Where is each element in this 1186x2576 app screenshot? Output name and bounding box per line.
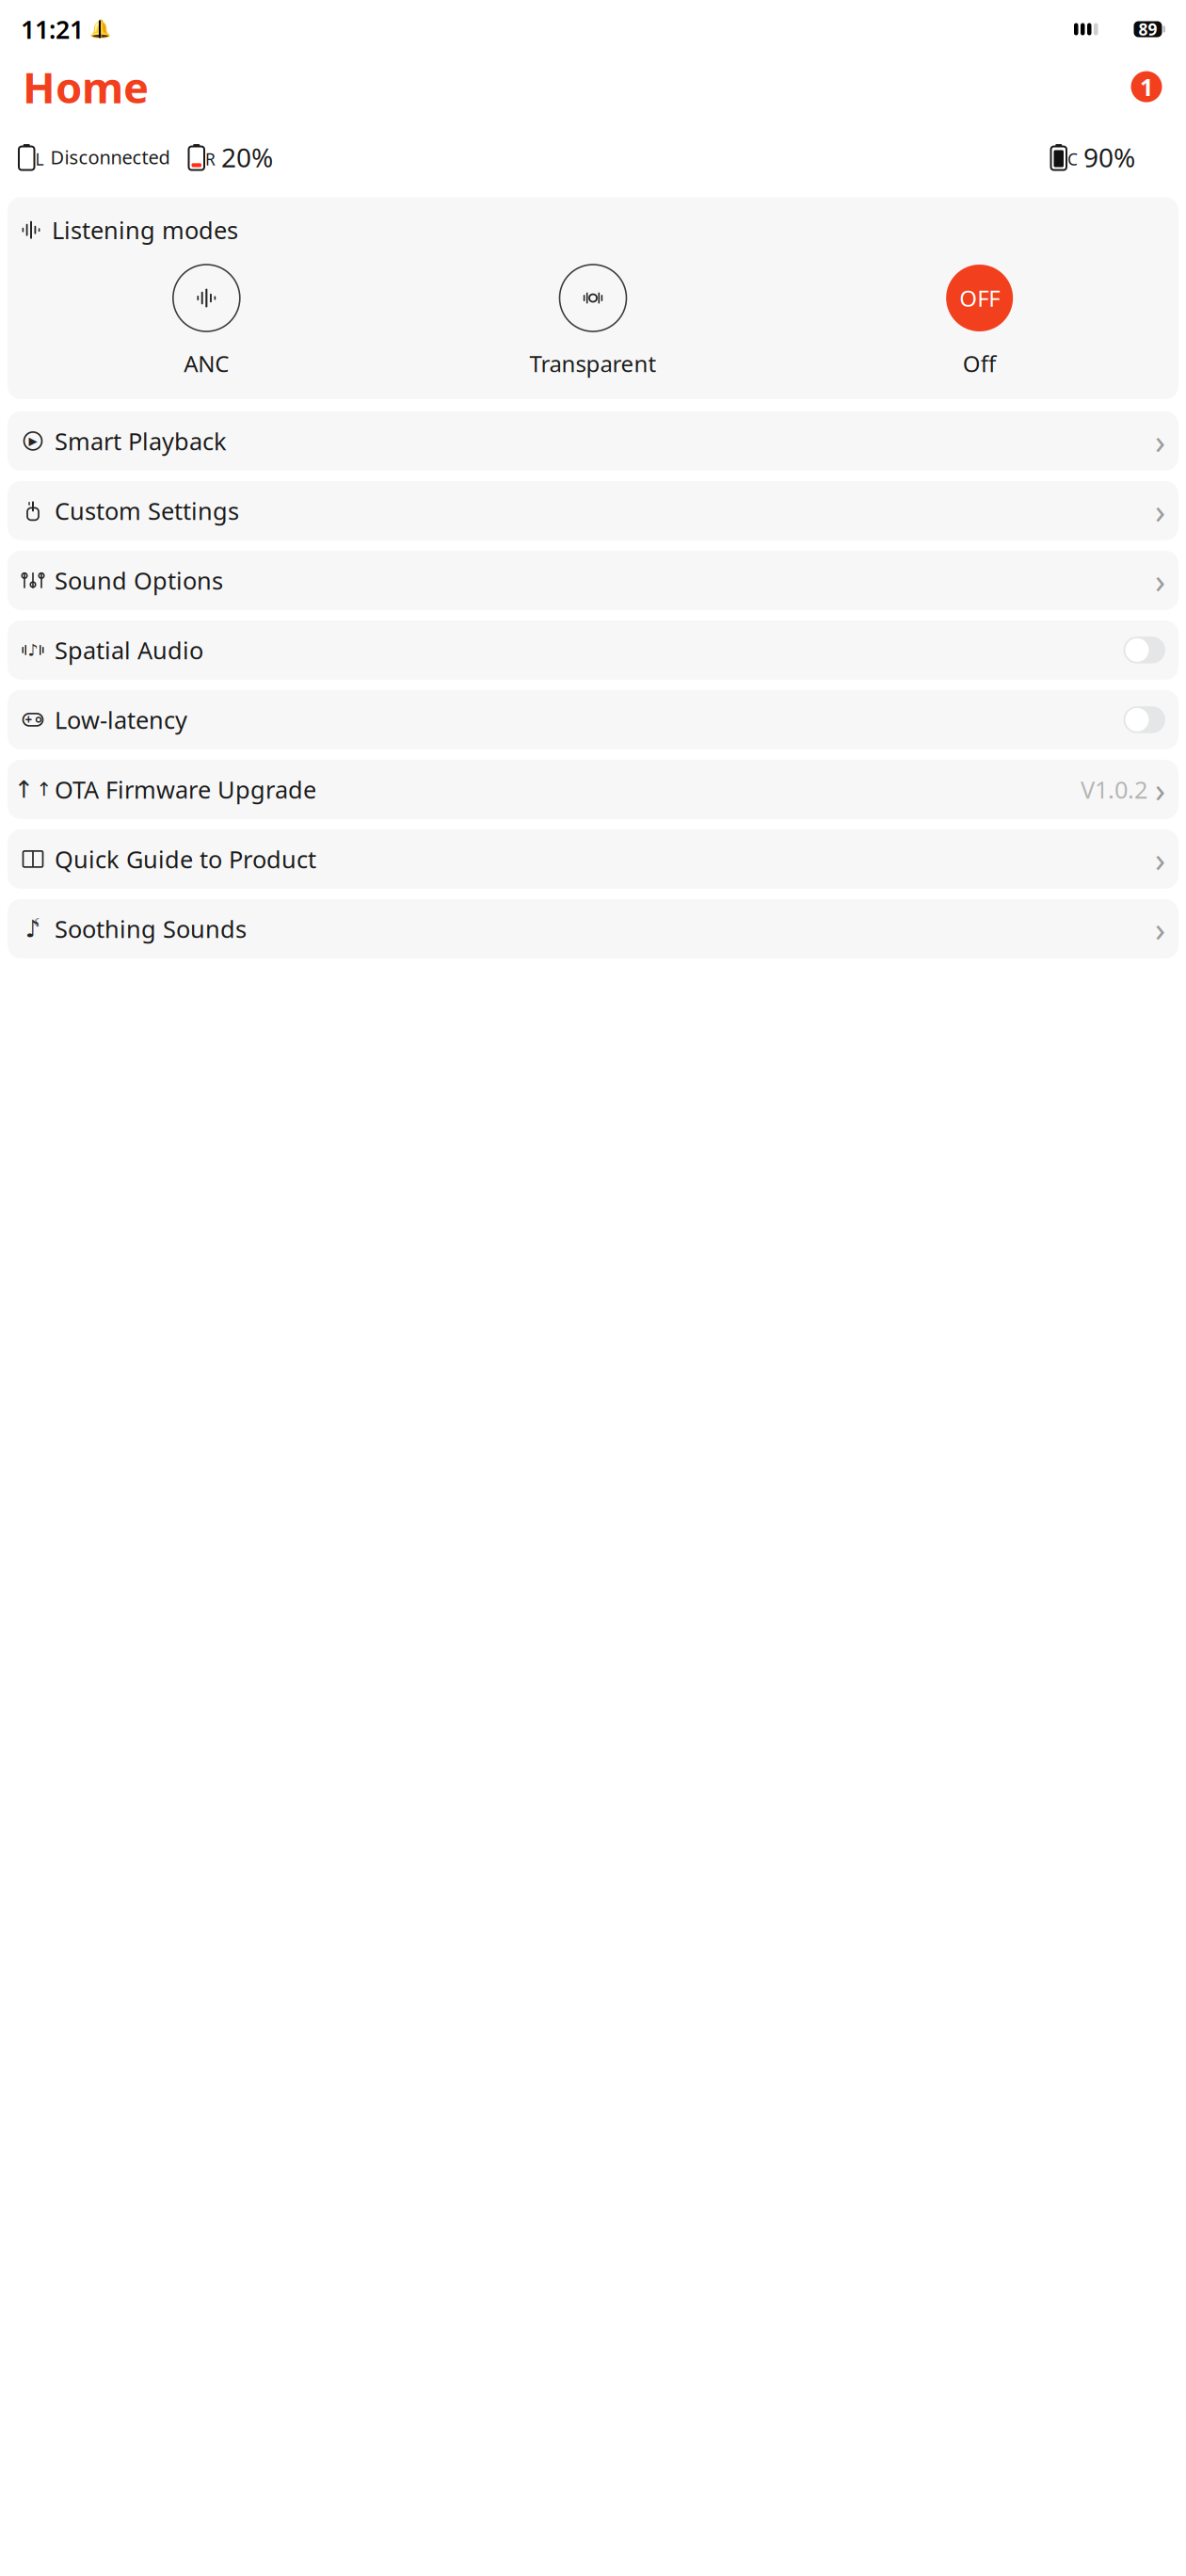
staticText: + (25, 711, 32, 728)
staticText: › (1155, 767, 1165, 812)
staticText: › (1155, 558, 1165, 603)
staticText: OTA Firmware Upgrade (55, 774, 316, 805)
staticText: 1 (1140, 71, 1153, 103)
button[interactable]: + (8, 690, 1178, 749)
staticText: › (1155, 906, 1165, 951)
button[interactable]: Sound Options (8, 551, 1178, 610)
button[interactable]: ↑ (8, 760, 1178, 819)
staticText: ☾ (33, 916, 44, 929)
staticText: OFF (959, 283, 1000, 313)
staticText: Quick Guide to Product (55, 843, 316, 875)
staticText: ANC (184, 348, 229, 378)
staticText: 20% (221, 140, 273, 175)
staticText: 🔔 (89, 19, 111, 39)
staticText: V1.0.2 (1081, 774, 1147, 805)
button[interactable]: Account (1130, 70, 1163, 104)
staticText: 11:21 (21, 13, 84, 46)
button[interactable]: ANC (13, 265, 400, 378)
staticText: Spatial Audio (55, 634, 203, 666)
staticText: R (205, 148, 216, 170)
staticText: C (1067, 148, 1078, 170)
button[interactable]: Custom Settings (8, 481, 1178, 540)
staticText: › (1155, 488, 1165, 533)
button[interactable]: Quick Guide to Product (8, 829, 1178, 889)
staticText: Disconnected (50, 145, 170, 170)
staticText: Low-latency (55, 704, 187, 736)
button[interactable]: ▶ (8, 411, 1178, 471)
staticText: Listening modes (52, 214, 238, 246)
staticText: Smart Playback (55, 425, 227, 457)
staticText: ↑ (14, 776, 33, 803)
staticText: ♪ (28, 641, 38, 659)
button[interactable]: ♪ (8, 899, 1178, 958)
staticText: Off (963, 348, 997, 378)
button[interactable]: OFF (786, 265, 1173, 378)
button[interactable]: Transparent (400, 265, 786, 378)
staticText: Custom Settings (55, 495, 239, 526)
staticText: 90% (1083, 140, 1135, 175)
staticText: Transparent (529, 348, 657, 378)
staticText: 89 (1138, 18, 1157, 40)
staticText: ♪ (25, 915, 40, 942)
staticText: Sound Options (55, 565, 223, 596)
staticText: › (1155, 419, 1165, 464)
staticText: › (1155, 837, 1165, 882)
staticText: L (35, 148, 44, 170)
staticText: Home (23, 58, 149, 115)
staticText: ↑ (36, 779, 52, 800)
staticText: ▶ (29, 435, 37, 447)
staticText: Soothing Sounds (55, 913, 247, 945)
button[interactable]: ♪ (8, 620, 1178, 680)
